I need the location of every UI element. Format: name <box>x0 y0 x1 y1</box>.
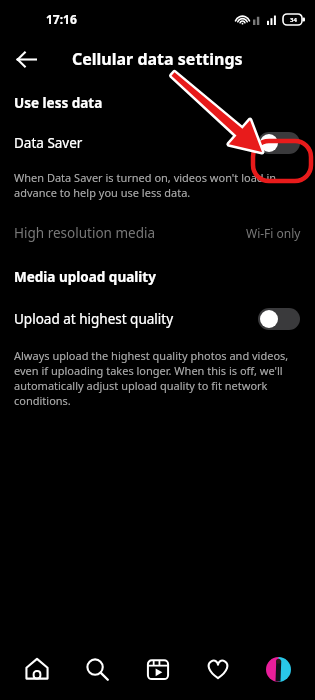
button[interactable]: Reels <box>135 644 181 694</box>
staticText: 34 <box>290 16 297 24</box>
staticText: Wi-Fi only <box>246 225 301 241</box>
button[interactable]: Upload at highest quality <box>0 304 315 334</box>
button[interactable]: High resolution media <box>0 220 315 246</box>
button[interactable]: Back <box>6 39 46 79</box>
button[interactable]: Data Saver <box>0 128 315 158</box>
staticText: High resolution media <box>14 224 246 242</box>
staticText: Upload at highest quality <box>14 310 258 328</box>
staticText: Media upload quality <box>14 268 156 286</box>
staticText: 17:16 <box>46 11 77 27</box>
staticText: Always upload the highest quality photos… <box>14 348 299 408</box>
staticText: Data Saver <box>14 134 258 152</box>
staticText: Cellular data settings <box>72 48 243 70</box>
button[interactable]: Search <box>74 644 120 694</box>
staticText: Use less data <box>14 94 103 112</box>
button[interactable]: Activity <box>195 644 241 694</box>
staticText: When Data Saver is turned on, videos won… <box>14 170 299 200</box>
button[interactable]: Home <box>14 644 60 694</box>
button[interactable]: Profile <box>255 644 301 694</box>
